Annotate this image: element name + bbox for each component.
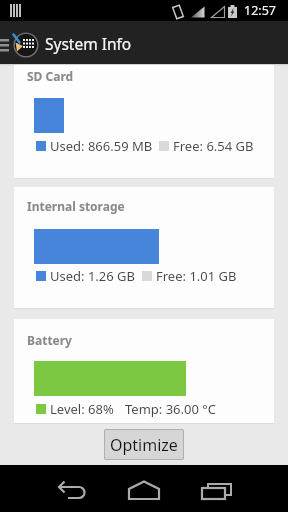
button[interactable]: Internal storage xyxy=(14,187,274,308)
staticText: Internal storage xyxy=(27,198,125,214)
staticText: Free: 6.54 GB xyxy=(173,137,254,155)
staticText: Used: 1.26 GB xyxy=(50,267,136,285)
button[interactable]: Optimize xyxy=(104,429,184,460)
button[interactable]: SD Card xyxy=(14,65,274,178)
staticText: Used: 866.59 MB xyxy=(50,137,153,155)
button[interactable]: Battery xyxy=(14,319,274,423)
staticText: System Info xyxy=(45,33,132,54)
staticText: Battery xyxy=(27,332,72,348)
button[interactable] xyxy=(120,465,168,512)
staticText: Free: 1.01 GB xyxy=(156,267,237,285)
staticText: Optimize xyxy=(110,434,178,456)
button[interactable] xyxy=(192,465,240,512)
staticText: 12:57 xyxy=(244,2,276,19)
staticText: Level: 68% xyxy=(50,400,114,418)
button[interactable] xyxy=(46,465,94,512)
button[interactable]: System Info xyxy=(0,21,288,64)
staticText: Temp: 36.00 °C xyxy=(125,400,217,418)
staticText: SD Card xyxy=(27,68,74,84)
